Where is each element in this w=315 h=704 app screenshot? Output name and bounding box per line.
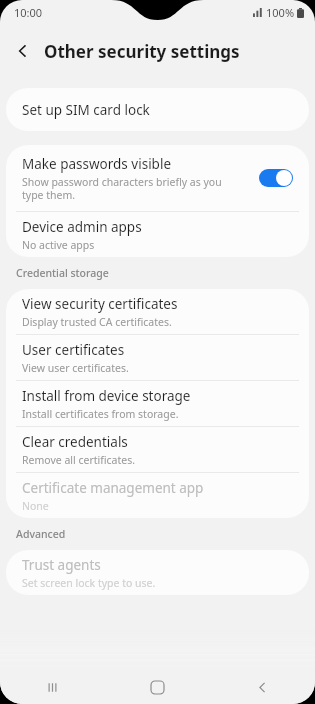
staticText: Set screen lock type to use. (22, 576, 156, 590)
staticText: Display trusted CA certificates. (22, 315, 172, 329)
staticText: Set up SIM card lock (22, 101, 150, 119)
button[interactable]: Make passwords visible (259, 169, 293, 187)
staticText: No active apps (22, 238, 95, 252)
button[interactable]: Trust agents (6, 550, 309, 595)
staticText: Install from device storage (22, 387, 191, 405)
staticText: Trust agents (22, 556, 101, 574)
staticText: Advanced (16, 527, 66, 541)
button[interactable]: Device admin apps (6, 212, 309, 257)
button[interactable]: Make passwords visible (6, 145, 309, 211)
staticText: Make passwords visible (22, 155, 172, 173)
button[interactable]: Navigate up (6, 34, 40, 68)
staticText: Credential storage (16, 266, 109, 280)
staticText: None (22, 499, 49, 513)
staticText: Show password characters briefly as you … (22, 175, 235, 202)
staticText: 100% (266, 5, 295, 20)
staticText: 10:00 (14, 5, 43, 20)
button[interactable]: Back (210, 670, 315, 704)
button[interactable]: View security certificates (6, 289, 309, 334)
staticText: Other security settings (44, 40, 240, 63)
button[interactable]: Install from device storage (6, 381, 309, 426)
staticText: View security certificates (22, 295, 178, 313)
staticText: Install certificates from storage. (22, 407, 179, 421)
staticText: Clear credentials (22, 433, 128, 451)
staticText: Device admin apps (22, 218, 142, 236)
staticText: Certificate management app (22, 479, 204, 497)
button[interactable]: Home (105, 670, 210, 704)
staticText: View user certificates. (22, 361, 129, 375)
button[interactable]: User certificates (6, 335, 309, 380)
button[interactable]: Recents (0, 670, 105, 704)
button[interactable]: Set up SIM card lock (6, 88, 309, 131)
staticText: Remove all certificates. (22, 453, 136, 467)
staticText: User certificates (22, 341, 125, 359)
button[interactable]: Clear credentials (6, 427, 309, 472)
button[interactable]: Certificate management app (6, 473, 309, 518)
